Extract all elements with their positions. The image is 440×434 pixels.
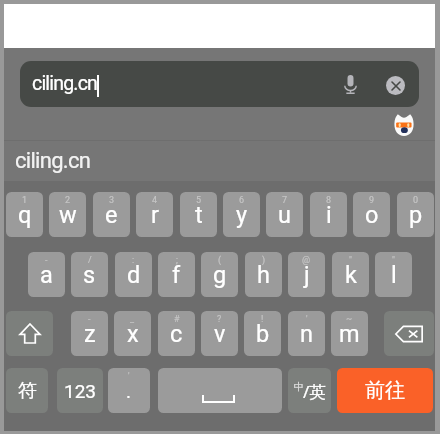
staticText: n [300,320,313,348]
staticText: b [256,320,270,348]
button[interactable]: # [158,311,195,356]
staticText: 1 [22,195,28,206]
button[interactable]: ( [201,252,238,297]
staticText: /英 [303,380,327,403]
button[interactable]: 前往 [337,368,433,413]
staticText: f [172,261,181,289]
staticText: ! [261,314,264,325]
staticText: _ [130,314,135,325]
staticText: 5 [196,195,202,206]
staticText: x [127,320,139,348]
button[interactable]: - [28,252,65,297]
staticText: a [40,261,53,289]
staticText: 0 [413,195,419,206]
button[interactable]: ' [108,368,150,413]
staticText: p [409,201,423,229]
button[interactable]: ! [244,311,281,356]
staticText: ? [217,314,222,325]
staticText: " [349,255,352,266]
button[interactable]: " [332,252,369,297]
staticText: e [105,201,118,229]
staticText: ( [218,255,222,266]
button[interactable]: Clear text [386,76,405,95]
staticText: z [84,320,96,348]
button[interactable]: 123 [57,368,103,413]
button[interactable]: 5 [180,192,217,237]
staticText: # [174,314,180,325]
button[interactable]: ? [201,311,238,356]
staticText: v [214,320,226,348]
button[interactable]: 符 [6,368,48,413]
button[interactable]: 1 [6,192,43,237]
staticText: " [392,255,395,266]
staticText: m [339,320,360,348]
staticText: . [126,380,132,402]
button[interactable]: ~ [331,311,368,356]
button[interactable]: : [115,252,152,297]
button[interactable]: - [71,311,108,356]
staticText: h [257,261,270,289]
staticText: l [391,261,397,289]
staticText: - [88,314,91,325]
staticText: 3 [109,195,115,206]
button[interactable]: Voice search [342,73,359,95]
staticText: 2 [65,195,71,206]
staticText: ) [262,255,266,266]
button[interactable]: 7 [266,192,303,237]
button[interactable]: Profile [394,114,414,136]
button[interactable]: 0 [397,192,434,237]
button[interactable]: Space [158,368,282,413]
staticText: o [365,201,379,229]
staticText: y [236,201,248,229]
button[interactable]: ) [245,252,282,297]
button[interactable]: ' [288,311,325,356]
staticText: ciling.cn [15,148,91,174]
staticText: w [59,201,77,229]
staticText: ; [176,255,178,266]
button[interactable]: 6 [223,192,260,237]
button[interactable]: 9 [353,192,390,237]
staticText: r [151,201,159,229]
staticText: 中 [294,380,304,393]
staticText: ' [128,371,130,382]
button[interactable]: 2 [49,192,86,237]
button[interactable]: 4 [136,192,173,237]
staticText: 9 [369,195,375,206]
staticText: d [127,261,141,289]
staticText: ciling.cn [32,72,98,95]
button[interactable]: / [71,252,108,297]
staticText: i [326,201,332,229]
staticText: @ [302,255,311,266]
staticText: u [278,201,291,229]
staticText: / [88,255,92,266]
staticText: ~ [346,314,353,325]
button[interactable]: @ [288,252,325,297]
button[interactable]: Backspace [384,311,434,356]
button[interactable]: 3 [93,192,130,237]
staticText: k [345,261,357,289]
button[interactable]: ; [158,252,195,297]
staticText: 6 [239,195,245,206]
staticText: - [45,255,48,266]
staticText: ' [306,314,308,325]
staticText: t [195,201,203,229]
staticText: 前往 [365,378,405,403]
button[interactable]: 8 [310,192,347,237]
staticText: 8 [326,195,332,206]
button[interactable]: ciling.cn [20,61,419,107]
button[interactable]: ciling.cn [4,141,435,181]
staticText: g [213,261,227,289]
staticText: 4 [152,195,158,206]
staticText: 符 [18,379,37,403]
staticText: j [304,261,310,289]
button[interactable]: _ [114,311,151,356]
staticText: : [132,255,135,266]
button[interactable]: Shift [6,311,53,356]
button[interactable]: " [375,252,412,297]
staticText: c [170,320,183,348]
staticText: q [18,201,32,229]
staticText: s [83,261,96,289]
button[interactable]: Switch language [288,368,331,413]
staticText: 123 [64,380,97,402]
staticText: 7 [282,195,288,206]
